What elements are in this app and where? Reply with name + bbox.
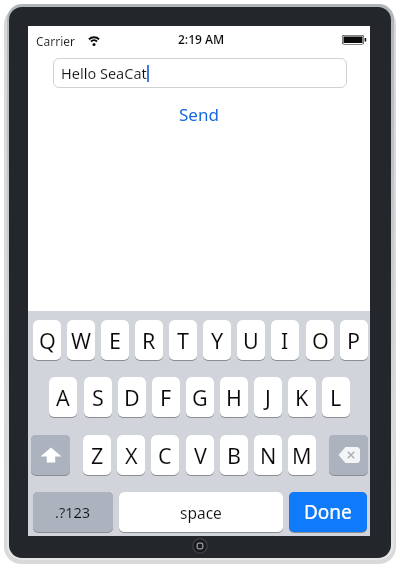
button[interactable]: P — [340, 320, 368, 361]
button[interactable]: E — [101, 320, 129, 361]
staticText: A — [56, 383, 70, 412]
button[interactable]: C — [151, 435, 179, 476]
button[interactable]: F — [152, 377, 180, 418]
staticText: Done — [304, 499, 352, 525]
button[interactable]: S — [84, 377, 112, 418]
button[interactable]: O — [306, 320, 334, 361]
button[interactable]: A — [49, 377, 77, 418]
staticText: R — [142, 326, 156, 355]
button[interactable]: W — [67, 320, 95, 361]
button[interactable]: Hello SeaCat — [53, 58, 347, 88]
staticText: Z — [91, 441, 104, 470]
button[interactable]: Q — [33, 320, 61, 361]
button[interactable]: Send — [28, 103, 370, 125]
button[interactable]: X — [117, 435, 145, 476]
button[interactable]: I — [271, 320, 299, 361]
button[interactable]: B — [220, 435, 248, 476]
staticText: T — [177, 326, 189, 355]
staticText: S — [92, 383, 104, 412]
staticText: Y — [211, 326, 224, 355]
staticText: V — [194, 441, 207, 470]
staticText: space — [180, 502, 222, 523]
button[interactable]: space — [119, 492, 283, 533]
staticText: C — [158, 441, 172, 470]
button[interactable]: .?123 — [33, 492, 113, 533]
staticText: P — [347, 326, 361, 355]
button[interactable]: R — [135, 320, 163, 361]
staticText: Carrier — [36, 33, 76, 49]
button[interactable]: J — [254, 377, 282, 418]
staticText: G — [192, 383, 208, 412]
staticText: J — [265, 383, 271, 412]
staticText: X — [125, 441, 138, 470]
button[interactable] — [31, 435, 70, 476]
staticText: L — [330, 383, 342, 412]
staticText: Send — [179, 103, 219, 125]
staticText: O — [312, 326, 329, 355]
button[interactable]: G — [186, 377, 214, 418]
button[interactable]: V — [186, 435, 214, 476]
staticText: Q — [39, 326, 56, 355]
staticText: E — [109, 326, 121, 355]
button[interactable] — [329, 435, 368, 476]
staticText: Hello SeaCat — [61, 63, 147, 83]
staticText: 2:19 AM — [178, 31, 225, 47]
button[interactable]: H — [220, 377, 248, 418]
button[interactable]: U — [237, 320, 265, 361]
button[interactable]: Done — [289, 492, 367, 533]
button[interactable]: L — [322, 377, 350, 418]
button[interactable]: D — [118, 377, 146, 418]
staticText: D — [124, 383, 140, 412]
staticText: I — [281, 326, 289, 355]
staticText: M — [292, 441, 312, 470]
button[interactable]: K — [288, 377, 316, 418]
button[interactable]: N — [254, 435, 282, 476]
staticText: N — [260, 441, 277, 470]
staticText: B — [227, 441, 241, 470]
staticText: W — [71, 326, 91, 355]
button[interactable]: Z — [83, 435, 111, 476]
staticText: .?123 — [55, 502, 91, 522]
button[interactable]: M — [288, 435, 316, 476]
button[interactable]: T — [169, 320, 197, 361]
staticText: K — [295, 383, 309, 412]
button[interactable]: Y — [203, 320, 231, 361]
staticText: U — [243, 326, 259, 355]
staticText: F — [160, 383, 172, 412]
staticText: H — [226, 383, 242, 412]
